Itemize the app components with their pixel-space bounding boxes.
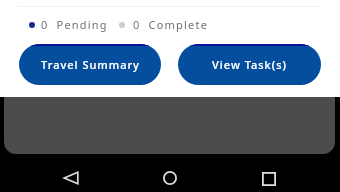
button[interactable]: Recent apps — [254, 164, 284, 192]
button[interactable]: Back — [56, 163, 86, 192]
button[interactable]: Home — [155, 163, 185, 192]
button[interactable]: Travel Summary — [19, 44, 161, 85]
staticText: 0 Complete — [133, 17, 209, 32]
button[interactable]: View Task(s) — [178, 44, 321, 85]
staticText: Travel Summary — [41, 57, 140, 72]
staticText: View Task(s) — [212, 57, 287, 72]
staticText: 0 Pending — [41, 17, 108, 32]
